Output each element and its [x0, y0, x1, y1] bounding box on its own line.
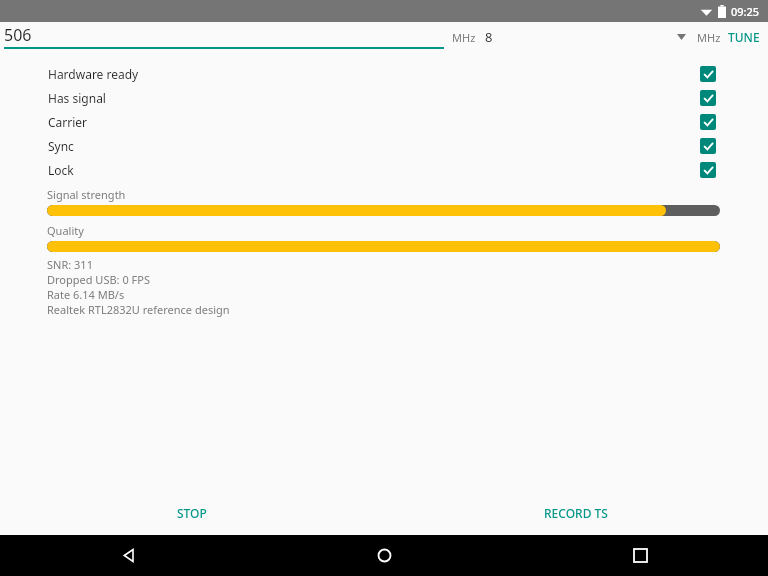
staticText: MHz	[697, 30, 721, 45]
staticText: 506	[4, 24, 32, 46]
staticText: MHz	[452, 30, 476, 45]
staticText: Quality	[47, 223, 84, 238]
staticText: Lock	[48, 162, 74, 178]
staticText: STOP	[177, 505, 207, 521]
button[interactable]: Sync	[0, 134, 768, 158]
staticText: Carrier	[48, 114, 88, 130]
staticText: Signal strength	[47, 187, 126, 202]
button[interactable]: STOP	[160, 496, 224, 530]
staticText: Sync	[48, 138, 74, 154]
button[interactable]: 506	[4, 22, 444, 52]
button[interactable]: Has signal	[0, 86, 768, 110]
button[interactable]: Recent apps	[512, 535, 768, 576]
button[interactable]: Lock	[0, 158, 768, 182]
button[interactable]: Back	[0, 535, 256, 576]
staticText: Rate 6.14 MB/s	[47, 287, 125, 302]
button[interactable]: TUNE	[724, 22, 764, 52]
staticText: Has signal	[48, 90, 106, 106]
staticText: SNR: 311	[47, 257, 93, 272]
button[interactable]: Home	[256, 535, 512, 576]
staticText: 8	[485, 28, 493, 46]
staticText: 09:25	[731, 4, 760, 19]
staticText: Dropped USB: 0 FPS	[47, 272, 150, 287]
button[interactable]: RECORD TS	[530, 496, 622, 530]
button[interactable]: Carrier	[0, 110, 768, 134]
staticText: Hardware ready	[48, 66, 139, 82]
button[interactable]: Hardware ready	[0, 62, 768, 86]
staticText: Realtek RTL2832U reference design	[47, 302, 230, 317]
staticText: TUNE	[728, 29, 760, 45]
button[interactable]: Bandwidth dropdown	[668, 22, 694, 52]
staticText: RECORD TS	[544, 505, 608, 521]
